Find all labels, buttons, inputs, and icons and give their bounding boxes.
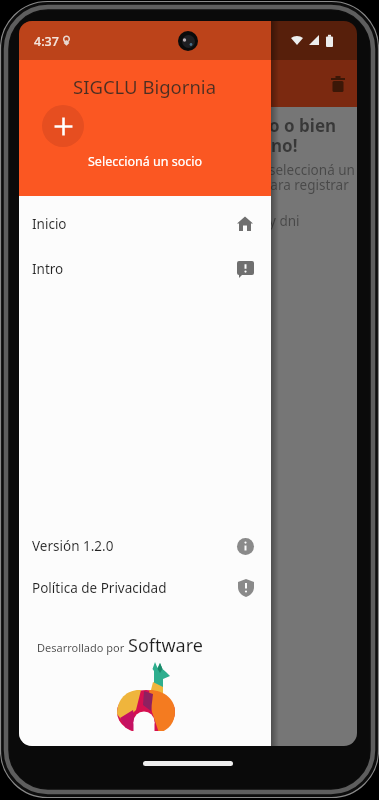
button[interactable] — [321, 64, 357, 102]
staticText: seleccioná un — [269, 161, 355, 179]
staticText: 4:37 — [34, 33, 59, 50]
button[interactable]: Intro — [19, 246, 271, 292]
button[interactable] — [42, 105, 84, 147]
staticText: Software — [128, 633, 203, 658]
button[interactable]: Inicio — [19, 201, 271, 247]
staticText: Seleccioná un socio — [88, 153, 203, 170]
staticText: para registrar — [262, 176, 349, 194]
staticText: Versión 1.2.0 — [32, 537, 114, 555]
staticText: SIGCLU Bigornia — [73, 74, 217, 99]
staticText: Intro — [32, 260, 64, 278]
staticText: Política de Privacidad — [32, 579, 167, 597]
staticText: Inicio — [32, 215, 67, 233]
staticText: o o bien — [269, 114, 337, 137]
staticText: Desarrollado por — [37, 640, 125, 655]
button[interactable]: Política de Privacidad — [19, 565, 271, 611]
staticText: no! — [271, 134, 298, 157]
staticText: y dni — [269, 212, 300, 230]
button[interactable]: Versión 1.2.0 — [19, 523, 271, 569]
